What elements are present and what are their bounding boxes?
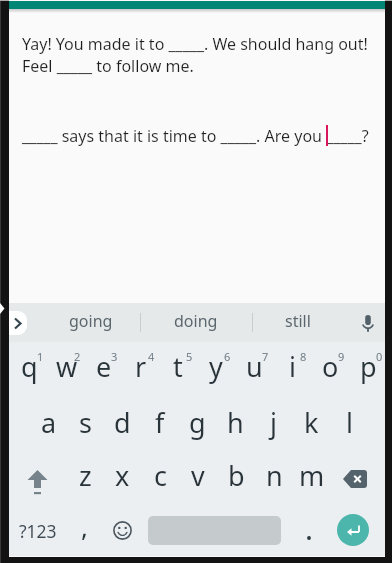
staticText: 9 [338, 349, 345, 364]
button[interactable] [9, 311, 27, 335]
button[interactable]: p [347, 342, 385, 396]
button[interactable]: still [253, 303, 343, 342]
staticText: 1 [37, 349, 44, 364]
staticText: i [289, 348, 296, 385]
staticText: x [115, 457, 130, 494]
button[interactable]: d [102, 396, 139, 450]
button[interactable]: , [65, 504, 103, 556]
button[interactable]: v [177, 450, 215, 504]
staticText: Yay! You made it to _____. We should han… [22, 33, 368, 77]
button[interactable]: g [176, 396, 214, 450]
button[interactable] [141, 504, 291, 556]
button[interactable]: a [28, 396, 65, 450]
button[interactable] [103, 504, 141, 556]
button[interactable]: going [46, 303, 136, 342]
staticText: r [135, 348, 147, 385]
staticText: 3 [111, 349, 118, 364]
staticText: 5 [186, 349, 193, 364]
button[interactable]: e [83, 342, 120, 396]
button[interactable]: q [9, 342, 46, 396]
staticText: b [228, 457, 245, 494]
staticText: _____ says that it is time to _____. Are… [22, 125, 369, 147]
staticText: k [304, 404, 319, 441]
staticText: m [299, 457, 325, 494]
staticText: t [173, 348, 183, 385]
button[interactable]: y [195, 342, 233, 396]
staticText: going [69, 310, 113, 332]
staticText: a [41, 404, 57, 441]
button[interactable]: k [290, 396, 328, 450]
button[interactable]: c [139, 450, 177, 504]
button[interactable]: j [252, 396, 290, 450]
staticText: doing [174, 310, 218, 332]
staticText: h [227, 404, 244, 441]
button[interactable] [291, 504, 321, 556]
staticText: f [155, 404, 165, 441]
button[interactable]: ?123 [9, 504, 65, 556]
button[interactable] [337, 514, 369, 546]
staticText: l [346, 404, 353, 441]
staticText: 8 [300, 349, 307, 364]
button[interactable] [354, 309, 382, 337]
staticText: c [154, 457, 167, 494]
staticText: 4 [148, 349, 155, 364]
staticText: 7 [262, 349, 269, 364]
button[interactable]: r [120, 342, 157, 396]
staticText: u [246, 348, 263, 385]
button[interactable]: o [309, 342, 347, 396]
button[interactable]: f [139, 396, 176, 450]
button[interactable]: t [157, 342, 195, 396]
staticText: n [266, 457, 283, 494]
staticText: still [285, 310, 311, 332]
button[interactable]: i [271, 342, 309, 396]
button[interactable]: m [291, 450, 329, 504]
staticText: j [270, 404, 277, 441]
button[interactable]: doing [151, 303, 241, 342]
button[interactable]: l [328, 396, 366, 450]
button[interactable]: n [253, 450, 291, 504]
staticText: , [81, 509, 88, 544]
staticText: w [56, 348, 78, 385]
staticText: g [189, 404, 206, 441]
button[interactable]: u [233, 342, 271, 396]
button[interactable] [329, 450, 385, 504]
staticText: q [21, 348, 38, 385]
staticText: e [96, 348, 112, 385]
button[interactable]: w [46, 342, 83, 396]
staticText: 2 [74, 349, 81, 364]
button[interactable]: s [65, 396, 102, 450]
button[interactable]: x [102, 450, 139, 504]
staticText: z [79, 457, 92, 494]
staticText: d [114, 404, 131, 441]
staticText: s [79, 404, 92, 441]
staticText: 6 [224, 349, 231, 364]
button[interactable]: b [215, 450, 253, 504]
staticText: v [191, 457, 205, 494]
staticText: p [360, 348, 377, 385]
staticText: y [209, 348, 223, 385]
staticText: o [322, 348, 339, 385]
button[interactable]: h [214, 396, 252, 450]
button[interactable] [9, 450, 65, 504]
staticText: ?123 [19, 519, 57, 543]
button[interactable]: z [65, 450, 102, 504]
staticText: 0 [376, 349, 383, 364]
